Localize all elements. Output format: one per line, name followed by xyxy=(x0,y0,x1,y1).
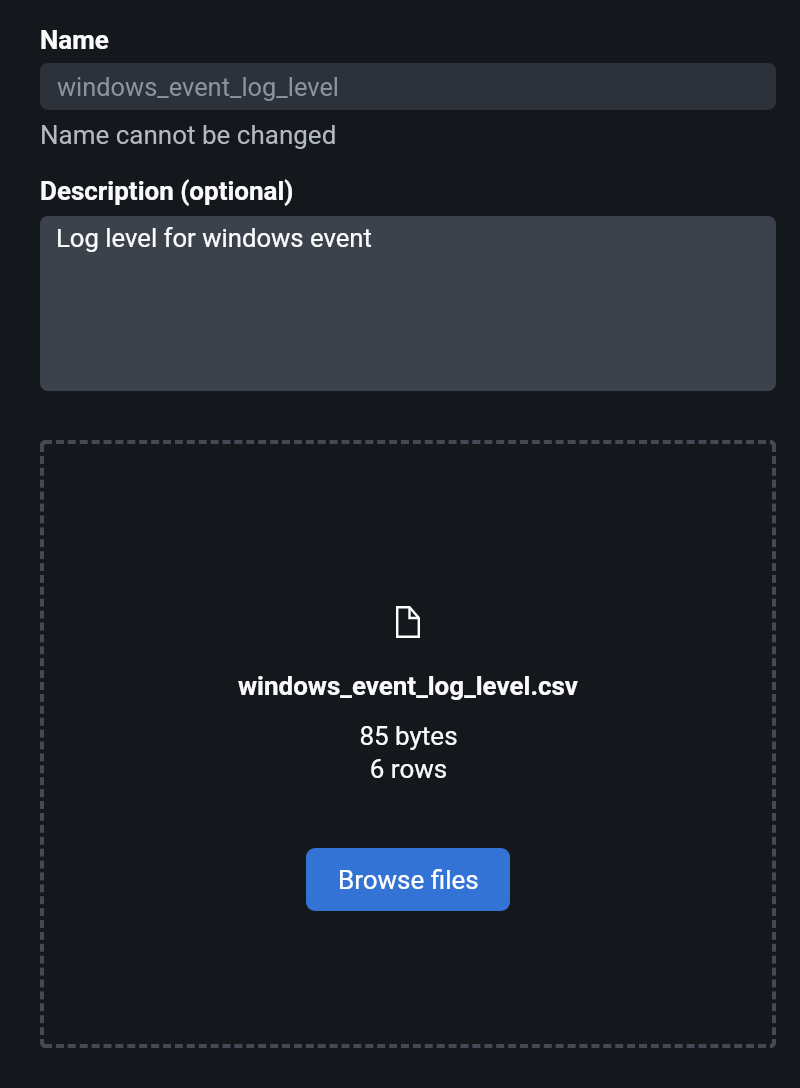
staticText: Name xyxy=(40,25,109,55)
button[interactable]: Browse files xyxy=(306,848,510,911)
staticText: Browse files xyxy=(338,865,479,895)
staticText: Log level for windows event xyxy=(56,223,372,253)
button[interactable]: Drop CSV file here to upload xyxy=(40,440,776,1048)
staticText: 85 bytes 6 rows xyxy=(359,721,458,784)
staticText: windows_event_log_level.csv xyxy=(238,671,578,701)
button[interactable]: Log level for windows event xyxy=(40,216,776,391)
staticText: windows_event_log_level xyxy=(57,72,340,102)
staticText: Description (optional) xyxy=(40,176,294,206)
staticText: Name cannot be changed xyxy=(40,120,337,150)
other: Uploaded file xyxy=(396,606,420,638)
button[interactable]: windows_event_log_level xyxy=(40,63,776,110)
